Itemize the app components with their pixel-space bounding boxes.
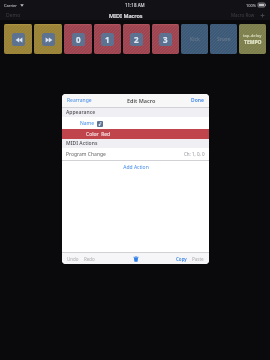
button[interactable]: 2 — [123, 24, 150, 54]
staticText: Color Red — [86, 131, 111, 138]
staticText: 100% — [246, 3, 257, 8]
staticText: tap-delay — [243, 33, 262, 39]
button[interactable]: Snare — [210, 24, 237, 54]
button[interactable]: Add macro — [259, 12, 265, 18]
staticText: Carrier — [4, 3, 18, 8]
button[interactable]: Rewind — [4, 24, 32, 54]
staticText: Copy — [176, 256, 187, 262]
button[interactable]: Delete — [131, 254, 140, 263]
staticText: Paste — [192, 256, 204, 262]
staticText: Done — [191, 97, 204, 104]
button[interactable]: Add Action — [62, 161, 209, 173]
staticText: 11:18 AM — [125, 2, 145, 8]
staticText: Kick — [190, 36, 200, 43]
button[interactable]: Copy — [175, 255, 188, 263]
staticText: Appearance — [66, 109, 96, 116]
staticText: Add Action — [123, 164, 149, 171]
staticText: 3 — [163, 34, 168, 45]
button[interactable]: Undo — [66, 255, 80, 263]
button[interactable]: Name — [62, 117, 209, 129]
staticText: 2 — [134, 34, 139, 45]
staticText: Macro Row — [231, 12, 255, 18]
button[interactable]: 3 — [152, 24, 179, 54]
button[interactable]: Rearrange — [66, 96, 93, 105]
button[interactable]: 0 — [64, 24, 92, 54]
button[interactable]: tap-delay — [239, 24, 266, 54]
staticText: TEMPO — [244, 39, 262, 46]
button[interactable]: Macro Row — [230, 11, 256, 19]
staticText: Snare — [217, 36, 231, 43]
staticText: Redo — [84, 256, 95, 262]
button[interactable]: Fast forward — [34, 24, 62, 54]
staticText: Undo — [67, 256, 79, 262]
button[interactable]: Kick — [181, 24, 208, 54]
staticText: Name — [80, 120, 95, 127]
button[interactable]: Paste — [191, 255, 205, 263]
staticText: MIDI Macros — [109, 12, 143, 19]
staticText: Demo — [6, 12, 21, 19]
staticText: Ch: 1, 0, 0 — [184, 151, 205, 157]
staticText: MIDI Actions — [66, 140, 98, 147]
staticText: Program Change — [66, 151, 106, 158]
staticText: 1 — [105, 34, 110, 45]
button[interactable]: Color Red — [62, 129, 209, 139]
staticText: Rearrange — [67, 97, 92, 104]
button[interactable]: Done — [190, 96, 205, 105]
staticText: 0 — [76, 34, 81, 45]
staticText: Edit Macro — [127, 97, 156, 104]
button[interactable]: Demo — [5, 11, 22, 20]
button[interactable]: Redo — [83, 255, 96, 263]
button[interactable]: 1 — [94, 24, 121, 54]
button[interactable]: Program Change — [62, 148, 209, 160]
